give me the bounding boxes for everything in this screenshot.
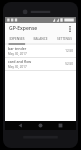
button[interactable]: More options — [65, 24, 75, 34]
button[interactable]: BALANCE — [28, 34, 52, 43]
staticText: card and flow — [8, 59, 32, 64]
button[interactable]: Back — [16, 121, 25, 130]
staticText: bar tender — [8, 46, 27, 51]
button[interactable]: Home — [36, 121, 45, 130]
staticText: 12.50 — [65, 49, 73, 53]
button[interactable]: EXPENSES — [5, 34, 28, 43]
staticText: SETTINGS — [57, 37, 72, 41]
staticText: BALANCE — [33, 37, 48, 41]
staticText: GP-Expense — [9, 25, 65, 32]
staticText: EXPENSES — [9, 37, 25, 41]
staticText: May 30, 2017 — [8, 52, 27, 56]
button[interactable]: card and flow — [5, 58, 76, 71]
button[interactable]: bar tender — [5, 45, 76, 58]
staticText: 52.50 — [65, 62, 73, 66]
button[interactable]: Recent apps — [56, 121, 65, 130]
staticText: May 30, 2017 — [8, 65, 27, 69]
button[interactable]: SETTINGS — [52, 34, 76, 43]
